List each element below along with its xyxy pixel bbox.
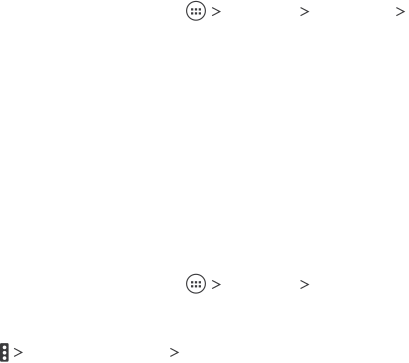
button[interactable]: More options xyxy=(0,342,22,362)
button[interactable]: Show all apps xyxy=(186,274,220,294)
button[interactable]: Next xyxy=(169,342,179,362)
button[interactable]: Show all apps xyxy=(186,2,220,22)
button[interactable]: More xyxy=(300,2,309,22)
button[interactable]: Next xyxy=(395,2,405,22)
button[interactable]: More xyxy=(300,274,309,294)
